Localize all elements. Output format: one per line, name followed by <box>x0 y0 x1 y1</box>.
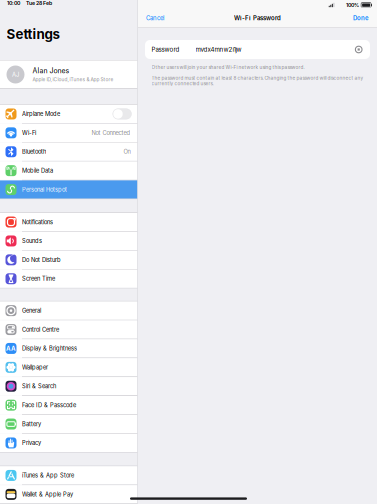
staticText: mvdx4mnw2i1jw <box>195 46 241 53</box>
staticText: Do Not Disturb <box>22 256 61 263</box>
staticText: Other users will join your shared Wi-Fi … <box>151 64 304 70</box>
staticText: Password <box>151 46 179 53</box>
button[interactable]: Bluetooth <box>0 143 137 161</box>
staticText: Notifications <box>22 219 53 225</box>
staticText: General <box>22 307 41 314</box>
button[interactable]: Wi-Fi <box>0 124 137 142</box>
staticText: Face ID & Passcode <box>22 402 76 409</box>
button[interactable]: Airplane Mode <box>0 105 137 123</box>
staticText: Wi-Fi <box>22 129 36 136</box>
button[interactable]: Do Not Disturb <box>0 251 137 269</box>
staticText: On <box>123 148 130 155</box>
button[interactable]: Done <box>347 12 377 24</box>
staticText: Cancel <box>146 14 164 22</box>
staticText: AA <box>6 345 16 352</box>
button[interactable]: Notifications <box>0 213 137 231</box>
button[interactable]: Battery <box>0 415 137 433</box>
staticText: Screen Time <box>22 275 55 282</box>
staticText: Apple ID, iCloud, iTunes & App Store <box>32 76 113 82</box>
button[interactable]: General <box>0 301 137 320</box>
staticText: Wallpaper <box>22 364 48 371</box>
staticText: Not Connected <box>91 129 130 136</box>
button[interactable]: Siri & Search <box>0 377 137 395</box>
staticText: Control Centre <box>22 326 59 333</box>
staticText: Sounds <box>22 237 42 244</box>
button[interactable]: Privacy <box>0 434 137 452</box>
staticText: Siri & Search <box>22 383 56 390</box>
staticText: Wi-Fi Password <box>234 14 281 22</box>
button[interactable]: Wallet & Apple Pay <box>0 485 137 503</box>
staticText: Alan Jones <box>32 67 69 75</box>
staticText: Mobile Data <box>22 167 53 174</box>
staticText: 100% <box>346 2 359 8</box>
staticText: Bluetooth <box>22 148 46 155</box>
staticText: Privacy <box>22 439 41 446</box>
staticText: Display & Brightness <box>22 345 77 352</box>
button[interactable]: Screen Time <box>0 270 137 288</box>
button[interactable]: Cancel <box>138 12 170 24</box>
staticText: Tue 28 Feb <box>26 0 52 6</box>
button[interactable]: Sounds <box>0 232 137 250</box>
staticText: Settings <box>6 26 59 42</box>
staticText: Wallet & Apple Pay <box>22 491 73 498</box>
button[interactable]: Wallpaper <box>0 358 137 376</box>
button[interactable]: Mobile Data <box>0 161 137 180</box>
button[interactable]: Personal Hotspot <box>0 180 137 199</box>
staticText: Battery <box>22 421 41 427</box>
button[interactable]: AJ <box>0 61 137 88</box>
staticText: iTunes & App Store <box>22 472 74 479</box>
staticText: Airplane Mode <box>22 110 60 117</box>
button[interactable]: Control Centre <box>0 320 137 339</box>
button[interactable]: Face ID & Passcode <box>0 396 137 414</box>
staticText: AJ <box>12 71 19 78</box>
button[interactable]: iTunes & App Store <box>0 466 137 485</box>
staticText: 10:00 <box>7 0 20 6</box>
staticText: Personal Hotspot <box>22 186 67 193</box>
button[interactable]: AA <box>0 339 137 358</box>
staticText: Done <box>353 14 369 22</box>
staticText: The password must contain at least 8 cha… <box>151 75 363 86</box>
